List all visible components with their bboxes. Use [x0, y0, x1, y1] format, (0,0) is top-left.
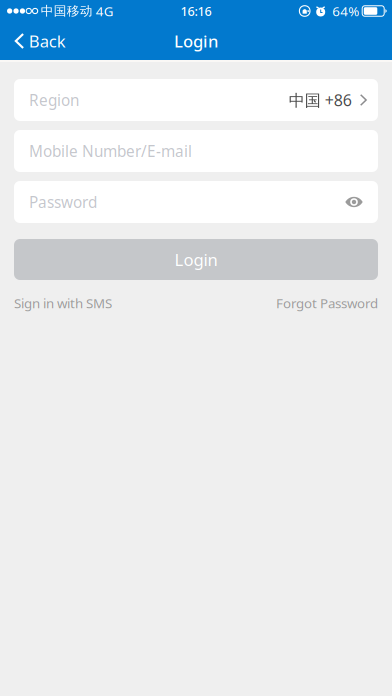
- staticText: Sign in with SMS: [14, 294, 112, 312]
- staticText: Region: [29, 90, 79, 110]
- staticText: Login: [174, 248, 217, 271]
- button[interactable]: Show password: [339, 187, 369, 217]
- button[interactable]: Forgot Password: [276, 294, 378, 312]
- staticText: Mobile Number/E-mail: [29, 141, 192, 161]
- staticText: Login: [174, 30, 218, 52]
- staticText: 64%: [332, 2, 359, 20]
- button[interactable]: Region: [14, 79, 378, 121]
- staticText: 4G: [96, 2, 114, 20]
- staticText: 中国移动: [41, 3, 93, 19]
- button[interactable]: Login: [14, 239, 378, 280]
- staticText: Forgot Password: [276, 294, 378, 312]
- button[interactable]: Back: [0, 22, 78, 60]
- staticText: Password: [29, 192, 97, 212]
- staticText: 中国 +86: [289, 89, 352, 111]
- staticText: 16:16: [180, 2, 211, 20]
- staticText: Back: [29, 30, 66, 52]
- button[interactable]: Sign in with SMS: [14, 294, 112, 312]
- button[interactable]: Mobile Number/E-mail: [14, 130, 378, 172]
